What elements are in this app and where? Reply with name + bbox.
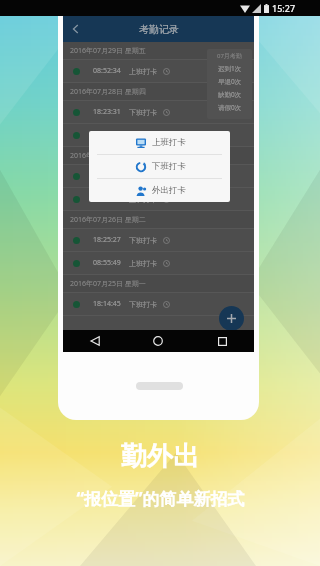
staticText: 上班打卡	[129, 259, 157, 268]
staticText: 下班打卡	[129, 172, 157, 181]
staticText: 2016年07月29日 星期五	[70, 46, 146, 56]
staticText: 08:51:22	[93, 194, 121, 204]
staticText: 上班打卡	[129, 195, 157, 204]
staticText: 下班打卡	[129, 300, 157, 309]
staticText: 缺勤0次	[218, 90, 242, 99]
staticText: 15:27	[272, 2, 296, 14]
staticText: 上班打卡	[129, 67, 157, 76]
staticText: 外出打卡	[152, 185, 186, 196]
staticText: 18:25:27	[93, 235, 121, 245]
staticText: “报位置”的简单新招式	[76, 487, 245, 510]
button[interactable]: Back	[63, 16, 89, 42]
staticText: 上班打卡	[152, 137, 186, 148]
button[interactable]: Home	[126, 330, 190, 352]
button[interactable]: 07月考勤	[207, 49, 252, 119]
staticText: 早退0次	[218, 77, 242, 86]
button[interactable]: 08:55:49	[63, 252, 254, 274]
staticText: 18:23:31	[93, 107, 121, 117]
staticText: 2016年07月26日 星期二	[70, 215, 146, 225]
staticText: 2016年07月28日 星期四	[70, 87, 146, 97]
staticText: 请假0次	[218, 103, 242, 112]
button[interactable]: 08:52:34	[63, 60, 254, 82]
button[interactable]: 08:51:22	[63, 188, 254, 210]
staticText: 18:30:10	[93, 171, 121, 181]
button[interactable]: 18:30:10	[63, 165, 254, 187]
staticText: 2016年07月27日 星期三	[70, 151, 146, 161]
button[interactable]: Add record	[219, 306, 244, 331]
staticText: 08:52:34	[93, 66, 121, 76]
staticText: 勤外出	[121, 440, 199, 473]
button[interactable]: Back	[63, 330, 126, 352]
staticText: 迟到1次	[218, 64, 242, 73]
staticText: 下班打卡	[129, 108, 157, 117]
staticText: 上班打卡	[129, 131, 157, 140]
staticText: 08:55:49	[93, 258, 121, 268]
staticText: 考勤记录	[139, 23, 179, 36]
staticText: 2016年07月25日 星期一	[70, 279, 146, 289]
staticText: 下班打卡	[129, 236, 157, 245]
button[interactable]: Recents	[190, 330, 254, 352]
staticText: 下班打卡	[152, 161, 186, 172]
button[interactable]: 08:53:01	[63, 124, 254, 146]
button[interactable]: 18:14:45	[63, 293, 254, 315]
staticText: 18:14:45	[93, 299, 121, 309]
button[interactable]: 18:23:31	[63, 101, 254, 123]
staticText: 08:53:01	[93, 130, 121, 140]
button[interactable]: 18:25:27	[63, 229, 254, 251]
button[interactable]: 外出打卡	[89, 179, 230, 202]
button[interactable]: 下班打卡	[89, 155, 230, 178]
button[interactable]: 上班打卡	[89, 131, 230, 154]
staticText: 07月考勤	[217, 52, 242, 60]
